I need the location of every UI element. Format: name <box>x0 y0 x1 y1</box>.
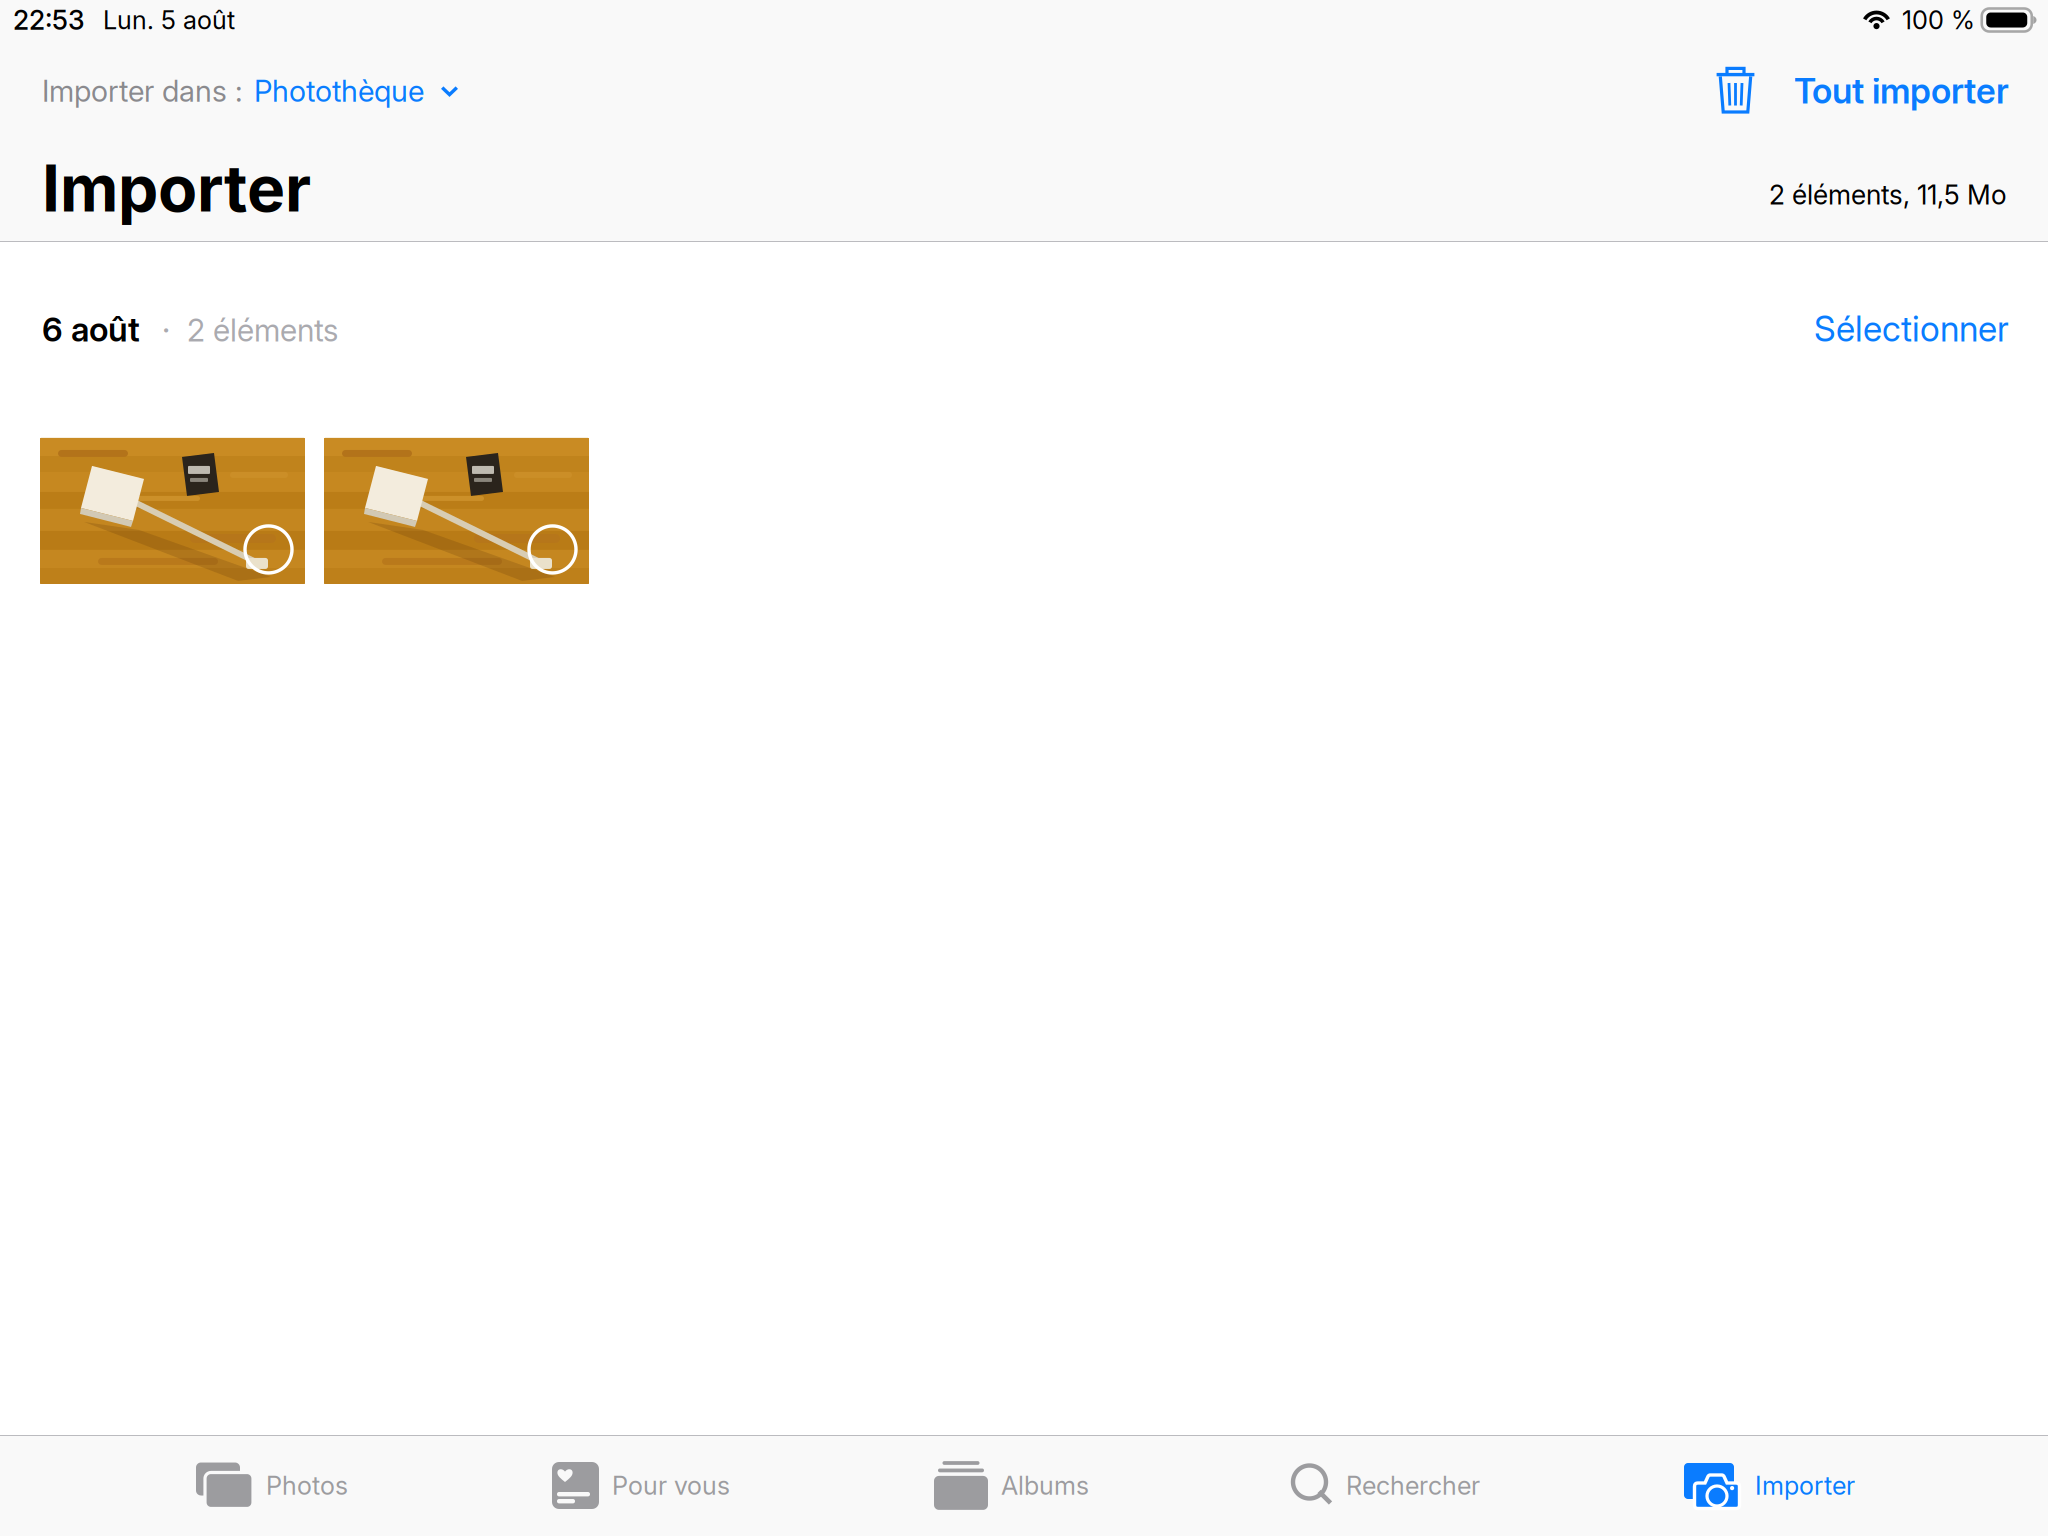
button[interactable]: Importer <box>1673 1435 1866 1536</box>
button[interactable]: Photo importée 2 <box>324 438 589 584</box>
staticText: Rechercher <box>1346 1470 1480 1501</box>
staticText: Importer <box>42 150 311 227</box>
staticText: Importer dans : <box>42 73 243 109</box>
staticText: Photothèque <box>254 73 424 109</box>
staticText: 2 éléments <box>187 312 338 349</box>
staticText: 6 août <box>42 309 140 350</box>
staticText: Sélectionner <box>1814 308 2009 350</box>
staticText: 2 éléments, 11,5 Mo <box>1769 179 2007 211</box>
staticText: Pour vous <box>612 1470 730 1501</box>
staticText: · <box>162 309 170 350</box>
staticText: Tout importer <box>1794 70 2009 112</box>
staticText: Importer <box>1755 1470 1855 1501</box>
button[interactable]: Photo importée 1 <box>40 438 305 584</box>
button[interactable]: Supprimer <box>1716 66 1755 116</box>
button[interactable]: Albums <box>923 1435 1100 1536</box>
staticText: Albums <box>1001 1470 1089 1501</box>
staticText: 22:53 <box>13 4 85 36</box>
button[interactable]: Pour vous <box>541 1435 741 1536</box>
button[interactable]: Rechercher <box>1282 1435 1491 1536</box>
button[interactable]: Tout importer <box>1755 70 2009 112</box>
staticText: 100 % <box>1902 5 1975 35</box>
staticText: Lun. 5 août <box>103 5 235 35</box>
button[interactable]: Sélectionner <box>1814 308 2009 350</box>
button[interactable]: Photos <box>185 1435 359 1536</box>
button[interactable]: Importer dans : <box>42 73 459 109</box>
staticText: Photos <box>266 1470 348 1501</box>
